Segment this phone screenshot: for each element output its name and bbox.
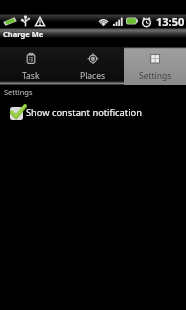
button[interactable]: Places — [62, 47, 124, 85]
button[interactable]: Settings — [124, 47, 186, 85]
staticText: Settings — [4, 87, 33, 97]
button[interactable]: Task — [0, 47, 62, 85]
staticText: 13:50 — [156, 14, 185, 28]
staticText: Settings — [139, 70, 172, 82]
staticText: Task — [22, 70, 40, 82]
button[interactable]: Show constant notification — [0, 103, 186, 121]
staticText: Show constant notification — [26, 106, 142, 119]
staticText: Places — [80, 70, 106, 82]
staticText: Charge Me — [3, 29, 44, 39]
